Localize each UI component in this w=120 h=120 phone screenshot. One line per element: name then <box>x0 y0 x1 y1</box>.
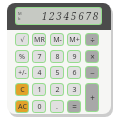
button[interactable]: MR <box>33 34 45 45</box>
button[interactable]: . <box>51 101 63 112</box>
staticText: b <box>18 16 21 21</box>
button[interactable]: ÷ <box>86 34 98 45</box>
button[interactable]: +/- <box>16 67 28 78</box>
button[interactable]: √ <box>16 34 28 45</box>
staticText: 8 <box>55 52 60 62</box>
staticText: 0 <box>37 102 42 112</box>
staticText: 3 <box>72 85 77 95</box>
button[interactable]: 9 <box>68 51 80 62</box>
staticText: √ <box>20 36 25 44</box>
staticText: C <box>20 85 25 95</box>
staticText: AC <box>18 102 27 112</box>
button[interactable]: 4 <box>33 67 45 78</box>
staticText: M- <box>53 35 62 45</box>
button[interactable]: = <box>68 101 80 112</box>
staticText: ÷ <box>90 34 95 45</box>
button[interactable]: 2 <box>51 84 63 95</box>
staticText: 12345678 <box>22 9 100 23</box>
staticText: 4 <box>37 68 42 78</box>
button[interactable]: 5 <box>51 67 63 78</box>
button[interactable]: × <box>86 51 98 62</box>
button[interactable]: 0 <box>33 101 45 112</box>
staticText: 9 <box>72 52 77 62</box>
staticText: − <box>90 67 95 78</box>
button[interactable]: 7 <box>33 51 45 62</box>
staticText: M <box>18 11 22 16</box>
staticText: + <box>90 92 95 103</box>
staticText: MR <box>34 35 45 45</box>
button[interactable]: 8 <box>51 51 63 62</box>
button[interactable]: % <box>16 51 28 62</box>
staticText: 5 <box>55 68 60 78</box>
button[interactable]: AC <box>16 101 28 112</box>
button[interactable]: − <box>86 67 98 78</box>
staticText: 2 <box>55 85 60 95</box>
staticText: % <box>19 52 25 62</box>
staticText: . <box>56 102 58 112</box>
button[interactable]: + <box>86 84 98 111</box>
button[interactable]: 3 <box>68 84 80 95</box>
button[interactable]: M- <box>51 34 63 45</box>
staticText: 6 <box>72 68 77 78</box>
staticText: +/- <box>18 68 27 77</box>
staticText: 1 <box>37 85 42 95</box>
button[interactable]: 1 <box>33 84 45 95</box>
button[interactable]: M+ <box>68 34 80 45</box>
staticText: M+ <box>69 35 80 45</box>
staticText: 7 <box>37 52 42 62</box>
staticText: = <box>72 101 77 112</box>
button[interactable]: C <box>16 84 28 95</box>
button[interactable]: 6 <box>68 67 80 78</box>
staticText: × <box>90 51 95 62</box>
